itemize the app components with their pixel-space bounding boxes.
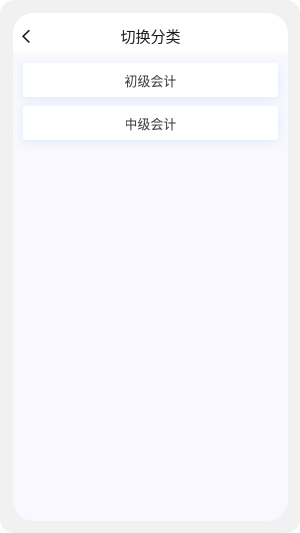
staticText: 初级会计 bbox=[124, 71, 176, 89]
button[interactable]: Back bbox=[16, 17, 36, 56]
button[interactable]: 中级会计 bbox=[23, 106, 278, 140]
staticText: 中级会计 bbox=[124, 114, 176, 132]
staticText: 切换分类 bbox=[120, 25, 180, 46]
button[interactable]: 初级会计 bbox=[23, 63, 278, 97]
